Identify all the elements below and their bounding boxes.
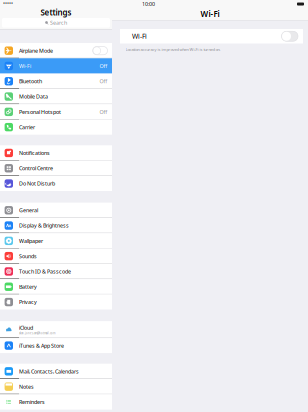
staticText: Battery bbox=[19, 283, 37, 290]
staticText: Settings bbox=[40, 7, 71, 18]
button[interactable]: Battery bbox=[0, 279, 112, 294]
staticText: Airplane Mode bbox=[19, 47, 53, 54]
staticText: Off bbox=[99, 108, 107, 115]
staticText: Carrier bbox=[19, 124, 35, 131]
staticText: Off bbox=[99, 78, 107, 85]
staticText: Reminders bbox=[19, 398, 45, 405]
staticText: Privacy bbox=[19, 298, 37, 306]
staticText: Sounds bbox=[19, 253, 37, 260]
staticText: Mail, Contacts, Calendars bbox=[19, 368, 79, 375]
staticText: Touch ID & Passcode bbox=[19, 268, 71, 275]
staticText: Display & Brightness bbox=[19, 222, 69, 229]
staticText: 10:00 bbox=[142, 0, 155, 8]
button[interactable]: Mobile Data bbox=[0, 89, 112, 104]
staticText: Location accuracy is improved when Wi-Fi… bbox=[125, 47, 220, 52]
button[interactable]: Wallpaper bbox=[0, 233, 112, 248]
staticText: iCloud bbox=[19, 324, 33, 331]
button[interactable]: iTunes & App Store bbox=[0, 338, 112, 353]
button[interactable]: Carrier bbox=[0, 119, 112, 135]
staticText: alan.jones.am@hotmail.com bbox=[19, 331, 55, 335]
staticText: Search bbox=[50, 19, 67, 26]
staticText: Off bbox=[99, 62, 107, 69]
button[interactable]: Mail, Contacts, Calendars bbox=[0, 364, 112, 379]
staticText: iTunes & App Store bbox=[19, 342, 64, 349]
staticText: Wi-Fi bbox=[200, 9, 219, 19]
button[interactable]: Display & Brightness bbox=[0, 218, 112, 233]
staticText: General bbox=[19, 207, 38, 214]
staticText: Bluetooth bbox=[19, 78, 42, 85]
button[interactable]: Sounds bbox=[0, 248, 112, 264]
button[interactable]: Notes bbox=[0, 379, 112, 394]
staticText: ••••• bbox=[3, 0, 13, 7]
button[interactable]: General bbox=[0, 203, 112, 218]
button[interactable]: Control Centre bbox=[0, 161, 112, 176]
button[interactable]: Touch ID & Passcode bbox=[0, 264, 112, 279]
button[interactable]: Reminders bbox=[0, 394, 112, 410]
button[interactable]: Do Not Disturb bbox=[0, 176, 112, 191]
staticText: Notifications bbox=[19, 149, 50, 156]
staticText: Wi-Fi bbox=[19, 62, 31, 69]
staticText: Mobile Data bbox=[19, 93, 48, 100]
button[interactable]: iCloud bbox=[0, 321, 112, 338]
staticText: Personal Hotspot bbox=[19, 108, 61, 115]
staticText: Control Centre bbox=[19, 165, 53, 172]
staticText: Wallpaper bbox=[19, 237, 43, 244]
button[interactable]: Privacy bbox=[0, 294, 112, 310]
staticText: Notes bbox=[19, 383, 34, 390]
button[interactable]: Bluetooth bbox=[0, 74, 112, 89]
staticText: Do Not Disturb bbox=[19, 180, 55, 187]
button[interactable]: Airplane Mode bbox=[0, 43, 112, 58]
button[interactable]: Notifications bbox=[0, 145, 112, 161]
button[interactable]: Wi-Fi bbox=[0, 58, 112, 74]
staticText: Wi-Fi bbox=[132, 32, 147, 41]
button[interactable]: Personal Hotspot bbox=[0, 104, 112, 119]
